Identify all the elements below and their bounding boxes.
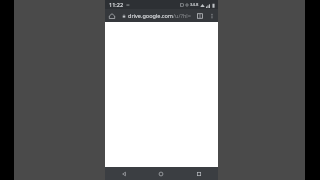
button[interactable]: Back bbox=[105, 167, 142, 180]
staticText: 11:22 bbox=[109, 1, 124, 8]
button[interactable]: More options bbox=[206, 10, 217, 21]
staticText: /u/?hl= bbox=[173, 12, 191, 19]
button[interactable]: Tab switcher bbox=[193, 9, 206, 22]
button[interactable]: Recent apps bbox=[180, 167, 218, 180]
button[interactable]: Home bbox=[105, 9, 118, 22]
button[interactable]: drive.google.com bbox=[118, 10, 193, 21]
staticText: 34.8 bbox=[190, 2, 199, 8]
button[interactable]: Home bbox=[142, 167, 180, 180]
staticText: drive.google.com bbox=[128, 12, 173, 19]
